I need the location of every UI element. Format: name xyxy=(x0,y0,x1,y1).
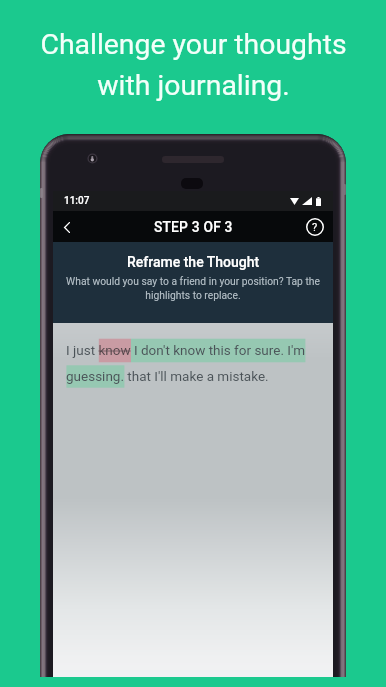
staticText: Challenge your thoughts with journaling. xyxy=(40,28,347,102)
button[interactable]: Help xyxy=(304,213,326,241)
staticText: 11:07 xyxy=(64,195,90,207)
button[interactable]: Back xyxy=(56,213,78,241)
staticText: ? xyxy=(312,221,318,234)
staticText: What would you say to a friend in your p… xyxy=(62,275,324,302)
staticText: STEP 3 OF 3 xyxy=(154,219,233,235)
staticText: Reframe the Thought xyxy=(127,254,260,270)
staticText: I just know I don't know this for sure. … xyxy=(66,342,320,385)
